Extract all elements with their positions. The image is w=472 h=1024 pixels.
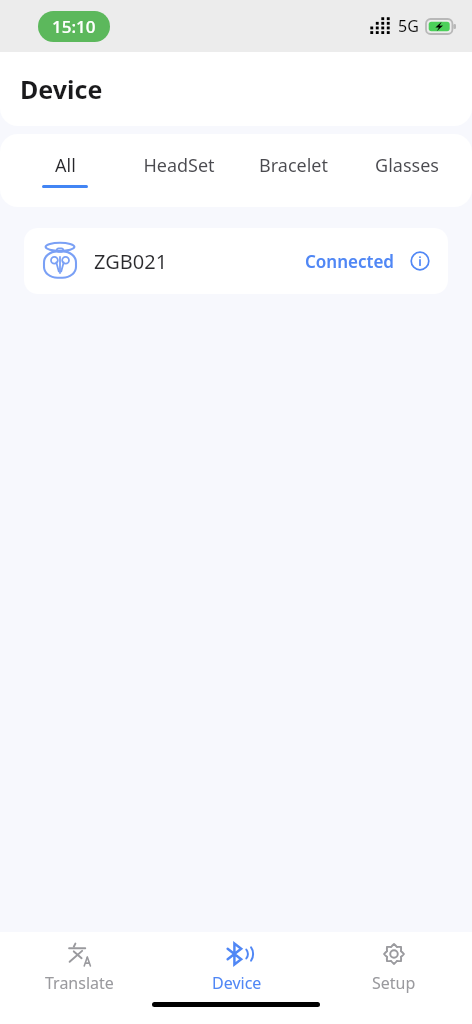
button[interactable]: ZGB021 — [24, 228, 448, 294]
staticText: Translate — [45, 972, 114, 994]
button[interactable]: Device — [158, 932, 315, 1002]
staticText: 15:10 — [52, 15, 96, 38]
staticText: All — [55, 153, 76, 178]
staticText: Glasses — [375, 153, 439, 178]
staticText: Connected — [305, 250, 394, 273]
staticText: 5G — [398, 15, 419, 37]
button[interactable]: Translate — [0, 932, 158, 1002]
staticText: Device — [212, 972, 262, 994]
button[interactable]: Glasses — [350, 134, 464, 207]
button[interactable]: Device info — [408, 249, 432, 273]
staticText: Setup — [372, 972, 416, 994]
staticText: HeadSet — [143, 153, 215, 178]
button[interactable]: All — [8, 134, 122, 207]
staticText: Bracelet — [259, 153, 328, 178]
staticText: Device — [20, 72, 103, 106]
button[interactable]: HeadSet — [122, 134, 236, 207]
button[interactable]: Setup — [315, 932, 472, 1002]
button[interactable]: Bracelet — [236, 134, 350, 207]
staticText: ZGB021 — [94, 248, 168, 275]
